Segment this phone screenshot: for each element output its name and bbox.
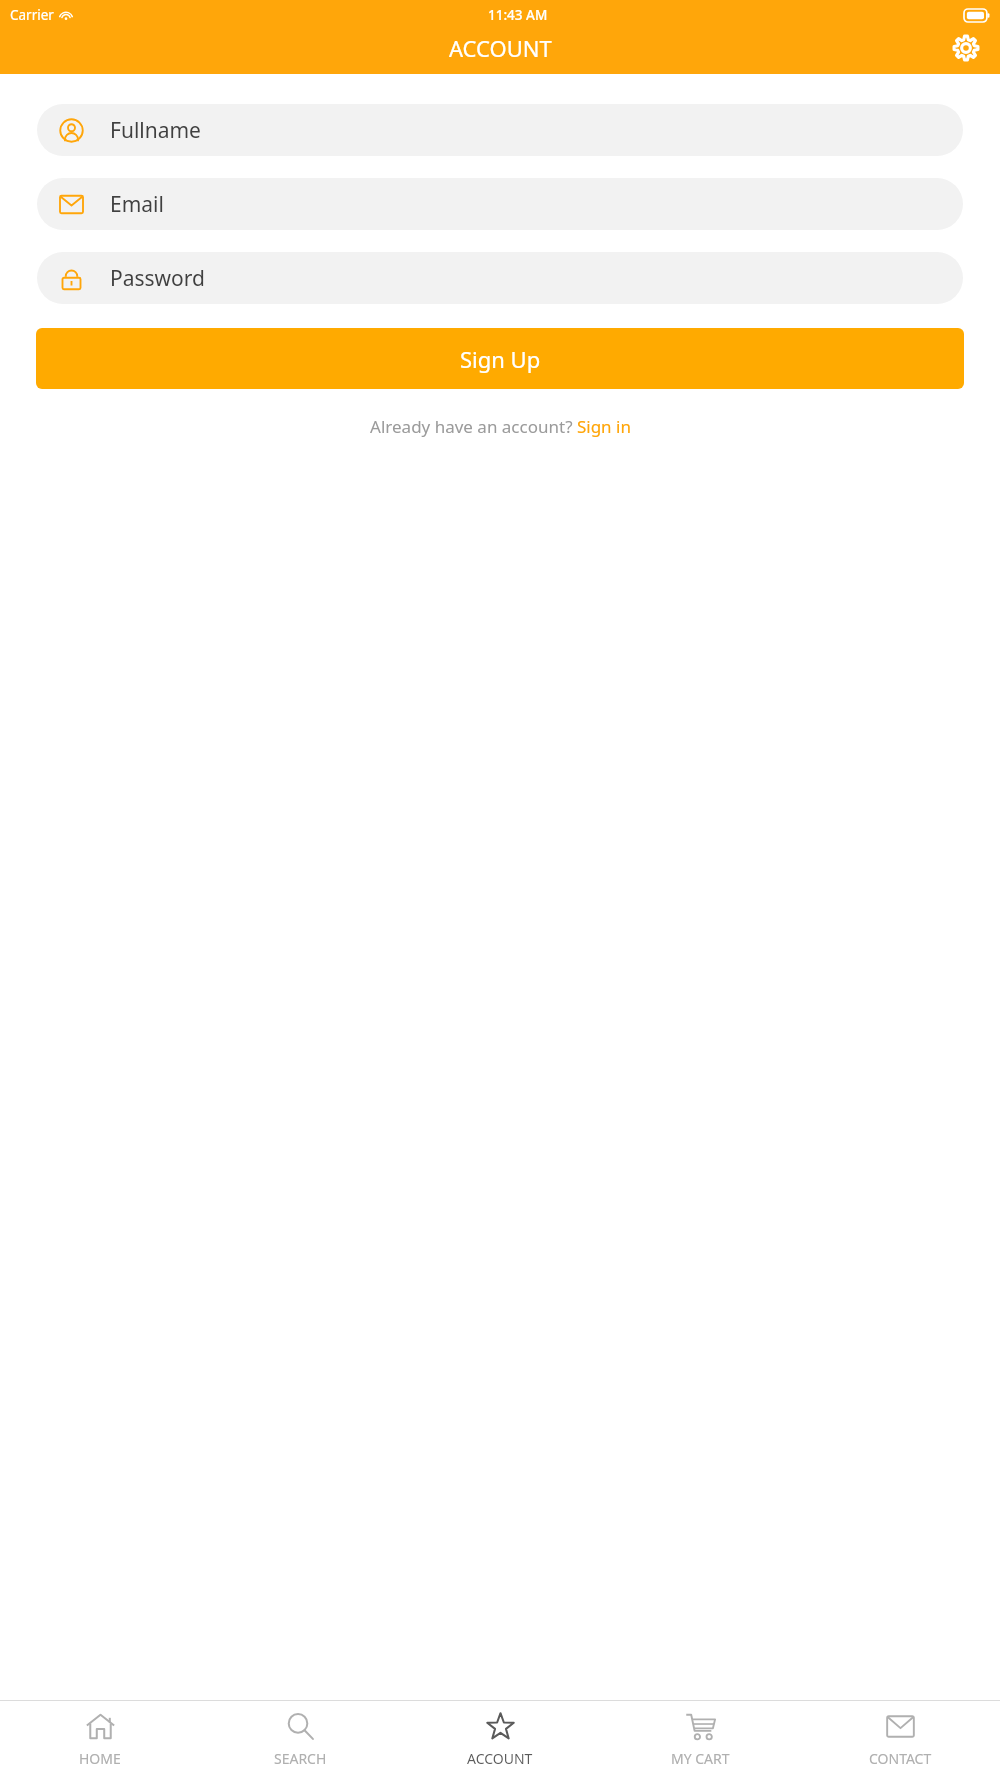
button[interactable]: CONTACT bbox=[800, 1701, 1000, 1778]
staticText: Sign Up bbox=[460, 344, 541, 374]
staticText: ACCOUNT bbox=[449, 33, 552, 63]
staticText: CONTACT bbox=[869, 1749, 932, 1768]
button[interactable]: Email bbox=[37, 178, 963, 230]
button[interactable]: Sign Up bbox=[36, 328, 964, 389]
staticText: Email bbox=[110, 190, 164, 219]
staticText: HOME bbox=[79, 1749, 121, 1768]
button[interactable]: Fullname bbox=[37, 104, 963, 156]
button[interactable]: MY CART bbox=[600, 1701, 800, 1778]
staticText: Fullname bbox=[110, 116, 201, 145]
staticText: 11:43 AM bbox=[488, 6, 548, 24]
staticText: Password bbox=[110, 264, 205, 293]
button[interactable]: SEARCH bbox=[200, 1701, 400, 1778]
button[interactable]: Password bbox=[37, 252, 963, 304]
staticText: ACCOUNT bbox=[467, 1749, 533, 1768]
button[interactable]: ACCOUNT bbox=[400, 1701, 600, 1778]
staticText: MY CART bbox=[671, 1749, 730, 1768]
button[interactable]: HOME bbox=[0, 1701, 200, 1778]
staticText: SEARCH bbox=[274, 1749, 327, 1768]
button[interactable]: Settings bbox=[946, 28, 986, 68]
staticText: Already have an account? Sign in bbox=[370, 415, 631, 438]
button[interactable]: Already have an account? Sign in bbox=[366, 411, 635, 442]
staticText: Carrier bbox=[10, 6, 54, 24]
